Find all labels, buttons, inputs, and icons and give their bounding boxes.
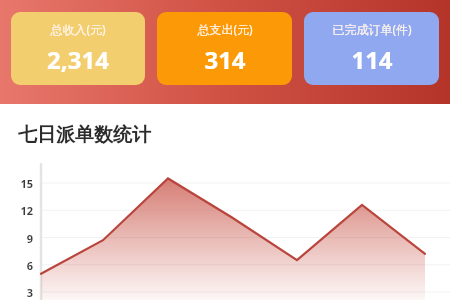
staticText: 15	[0, 176, 33, 191]
staticText: 314	[204, 43, 246, 76]
staticText: 6	[0, 258, 33, 273]
staticText: 114	[351, 43, 393, 76]
staticText: 总收入(元)	[50, 21, 106, 37]
staticText: 七日派单数统计	[18, 123, 151, 147]
staticText: 2,314	[47, 43, 109, 76]
staticText: 9	[0, 231, 33, 246]
staticText: 3	[0, 285, 33, 300]
staticText: 已完成订单(件)	[332, 21, 412, 37]
button[interactable]: 总收入(元)	[11, 12, 145, 85]
button[interactable]: 总支出(元)	[157, 12, 292, 85]
button[interactable]: 已完成订单(件)	[304, 12, 439, 85]
staticText: 12	[0, 203, 33, 218]
staticText: 总支出(元)	[197, 21, 253, 37]
